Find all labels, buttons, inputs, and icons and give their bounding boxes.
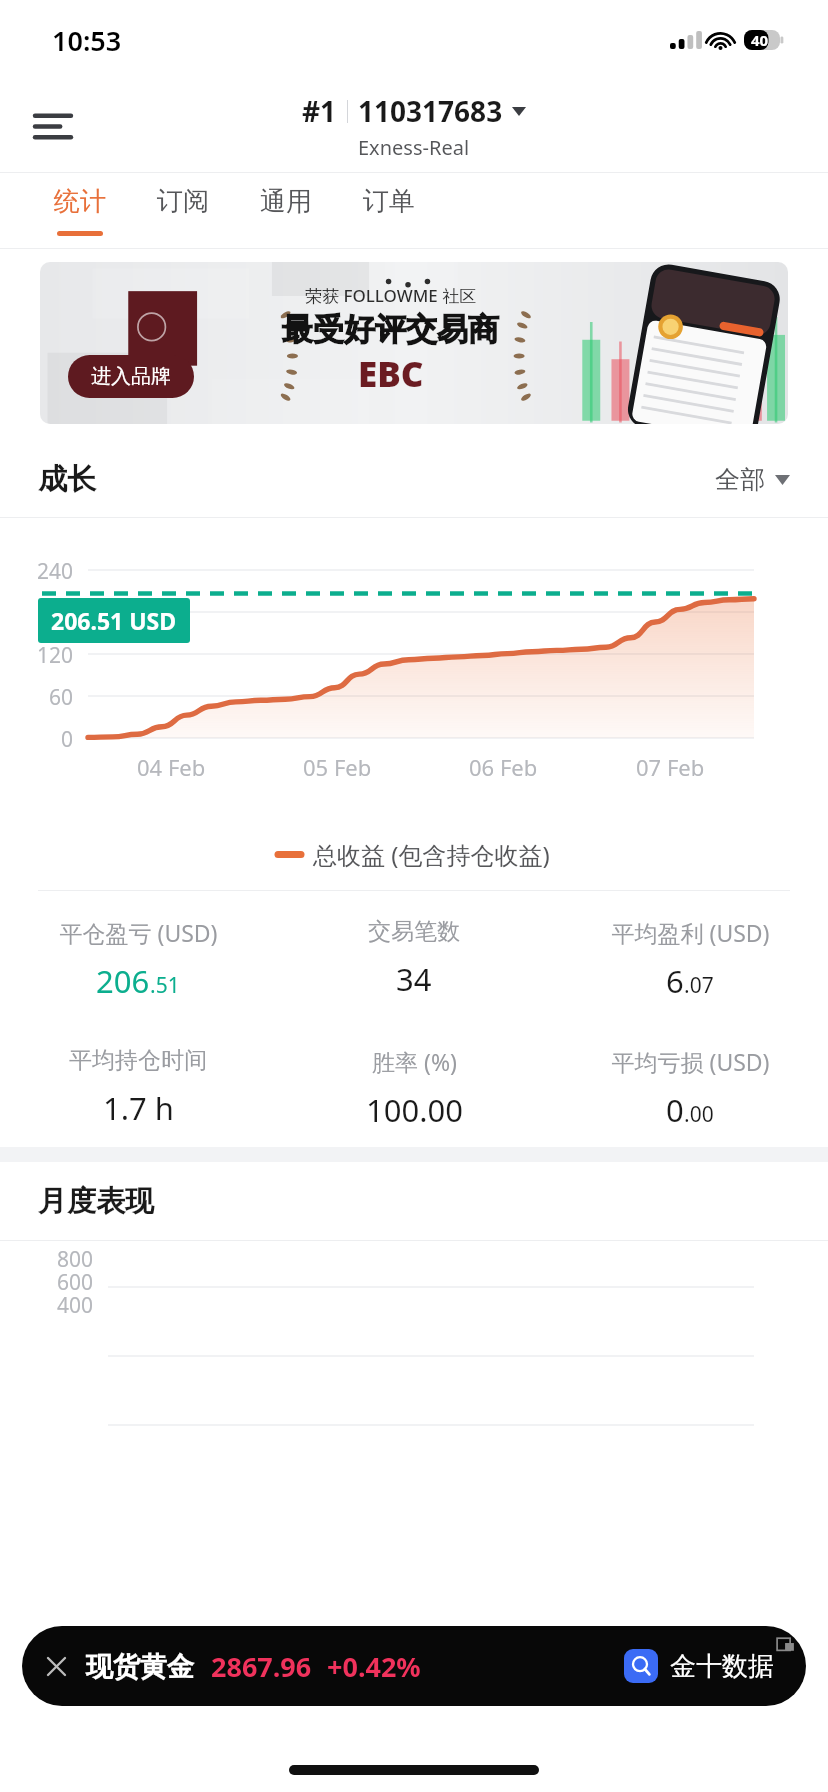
staticText: 最受好评交易商 [282, 310, 499, 349]
button[interactable]: #1 [302, 92, 526, 161]
button[interactable]: 荣获 FOLLOWME 社区 [40, 262, 788, 424]
staticText: 总收益 (包含持仓收益) [313, 838, 550, 871]
staticText: 荣获 FOLLOWME 社区 [305, 284, 477, 307]
staticText: 06 Feb [469, 752, 538, 782]
staticText: 全部 [715, 464, 765, 495]
staticText: 240 [37, 557, 74, 586]
staticText: 交易笔数 [368, 917, 460, 946]
staticText: 1.7 h [103, 1087, 174, 1129]
button[interactable]: Close ad [38, 1648, 74, 1684]
staticText: 订阅 [157, 185, 209, 218]
button[interactable]: Menu [24, 97, 82, 155]
staticText: 2867.96 [211, 1648, 312, 1685]
staticText: 180 [37, 599, 74, 628]
staticText: 6 [666, 960, 684, 1002]
staticText: 206 [96, 960, 150, 1002]
button[interactable]: 平均盈利 (USD) [552, 917, 828, 1002]
button[interactable]: 平均持仓时间 [0, 1046, 276, 1129]
staticText: 120 [37, 641, 74, 670]
staticText: 10:53 [52, 22, 122, 59]
button[interactable]: 交易笔数 [276, 917, 552, 1000]
staticText: EBC [358, 350, 424, 398]
staticText: 400 [57, 1291, 94, 1320]
button[interactable]: 统计 [28, 173, 131, 249]
staticText: 60 [49, 683, 74, 712]
staticText: 月度表现 [38, 1183, 154, 1220]
staticText: 40 [751, 30, 769, 50]
staticText: 100.00 [366, 1089, 463, 1131]
button[interactable]: 平仓盈亏 (USD) [0, 917, 276, 1002]
staticText: +0.42% [327, 1648, 421, 1685]
button[interactable]: Close ad [22, 1626, 806, 1706]
staticText: 110317683 [358, 92, 503, 130]
staticText: 206.51 USD [51, 605, 177, 636]
staticText: 04 Feb [137, 752, 206, 782]
staticText: .07 [684, 971, 714, 1000]
staticText: 0 [61, 725, 74, 754]
staticText: #1 [302, 92, 337, 130]
staticText: 统计 [54, 185, 106, 218]
button[interactable]: 全部 [715, 464, 790, 495]
staticText: 07 Feb [636, 752, 705, 782]
staticText: 平均盈利 (USD) [611, 917, 770, 948]
button[interactable]: 通用 [234, 173, 337, 249]
button[interactable]: 订单 [337, 173, 440, 249]
staticText: 订单 [363, 185, 415, 218]
button[interactable]: 进入品牌 [68, 355, 194, 398]
staticText: 0 [666, 1089, 684, 1131]
button[interactable]: 订阅 [131, 173, 234, 249]
other: Ad info [775, 1634, 796, 1655]
staticText: 600 [57, 1268, 94, 1297]
staticText: 平仓盈亏 (USD) [59, 917, 218, 948]
staticText: .00 [684, 1100, 714, 1129]
button[interactable]: 胜率 (%) [276, 1046, 552, 1131]
staticText: 通用 [260, 185, 312, 218]
staticText: 05 Feb [303, 752, 372, 782]
staticText: 800 [57, 1245, 94, 1274]
staticText: 平均亏损 (USD) [611, 1046, 770, 1077]
button[interactable]: 平均亏损 (USD) [552, 1046, 828, 1131]
staticText: 成长 [38, 461, 96, 498]
staticText: 34 [396, 958, 432, 1000]
staticText: .51 [150, 971, 180, 1000]
staticText: 进入品牌 [91, 364, 171, 389]
staticText: 现货黄金 [86, 1650, 194, 1684]
staticText: 胜率 (%) [372, 1046, 457, 1077]
staticText: Exness-Real [358, 134, 470, 161]
staticText: 平均持仓时间 [69, 1046, 207, 1075]
staticText: 金十数据 [670, 1650, 774, 1683]
